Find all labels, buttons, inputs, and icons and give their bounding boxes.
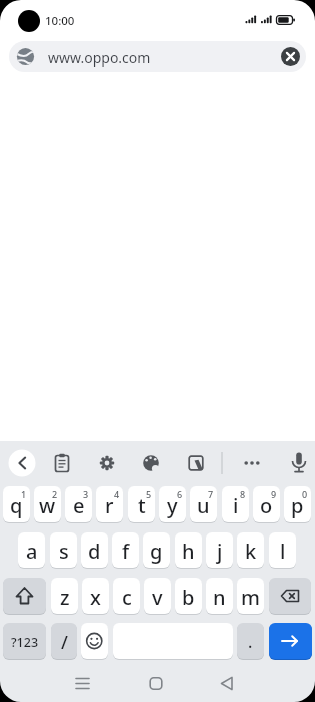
button[interactable]: www.oppo.com [9,41,306,72]
button[interactable]: j [206,532,233,568]
staticText: 7 [208,488,214,500]
staticText: j [217,538,223,565]
button[interactable] [140,667,172,699]
staticText: s [59,538,69,565]
staticText: 0 [302,488,308,500]
button[interactable]: ?123 [3,623,46,659]
staticText: z [60,584,70,611]
button[interactable] [269,578,311,614]
staticText: 3 [83,488,89,500]
staticText: 5 [146,488,152,500]
button[interactable]: c [113,578,140,614]
button[interactable]: f [112,532,139,568]
button[interactable] [87,443,127,483]
staticText: 9 [271,488,277,500]
button[interactable]: t [128,486,155,522]
staticText: ?123 [11,634,39,651]
staticText: a [26,538,38,565]
button[interactable]: p [284,486,311,522]
staticText: t [138,492,146,519]
button[interactable]: h [175,532,202,568]
button[interactable] [232,443,272,483]
staticText: k [245,538,257,565]
button[interactable]: u [190,486,217,522]
staticText: p [291,492,304,519]
button[interactable]: b [175,578,202,614]
button[interactable]: r [96,486,123,522]
staticText: . [248,631,253,653]
button[interactable]: k [237,532,264,568]
button[interactable]: i [222,486,249,522]
staticText: / [61,630,68,655]
button[interactable] [279,443,315,483]
button[interactable]: y [159,486,186,522]
staticText: e [73,492,85,519]
staticText: q [10,492,23,519]
button[interactable] [269,623,312,659]
staticText: y [167,492,178,519]
button[interactable] [176,443,216,483]
button[interactable]: . [237,623,264,659]
button[interactable] [81,623,108,659]
button[interactable]: e [65,486,92,522]
staticText: 1 [21,488,27,500]
button[interactable] [2,443,42,483]
button[interactable] [42,443,82,483]
button[interactable]: o [253,486,280,522]
staticText: 8 [240,488,246,500]
button[interactable] [3,578,46,614]
staticText: 2 [52,488,58,500]
staticText: u [197,492,210,519]
button[interactable]: z [51,578,78,614]
staticText: 4 [114,488,120,500]
staticText: m [241,584,260,611]
staticText: b [182,584,195,611]
button[interactable] [66,667,98,699]
staticText: i [233,492,239,519]
button[interactable] [211,667,243,699]
staticText: r [105,492,114,519]
staticText: d [88,538,101,565]
staticText: 6 [177,488,183,500]
staticText: x [90,584,101,611]
button[interactable]: g [143,532,170,568]
button[interactable]: n [206,578,233,614]
staticText: l [280,538,286,565]
button[interactable]: / [51,623,77,659]
button[interactable]: d [81,532,108,568]
staticText: w [39,492,56,519]
staticText: v [152,584,163,611]
button[interactable]: l [269,532,296,568]
staticText: 10:00 [45,13,75,29]
button[interactable]: q [3,486,30,522]
button[interactable]: a [18,532,45,568]
button[interactable] [281,47,300,66]
staticText: c [122,584,132,611]
staticText: h [182,538,195,565]
button[interactable]: x [82,578,109,614]
staticText: o [260,492,273,519]
staticText: n [213,584,226,611]
button[interactable]: w [34,486,61,522]
button[interactable]: s [50,532,77,568]
button[interactable] [131,443,171,483]
staticText: g [150,538,163,565]
button[interactable]: v [144,578,171,614]
staticText: www.oppo.com [48,48,151,67]
staticText: f [122,538,130,565]
button[interactable]: m [237,578,264,614]
